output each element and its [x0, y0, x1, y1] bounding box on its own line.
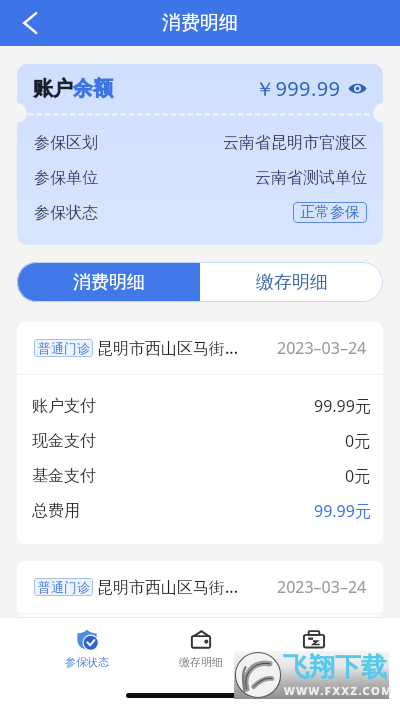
button[interactable]: Back: [9, 2, 51, 44]
button[interactable]: 缴存明细: [144, 618, 257, 694]
staticText: 余额: [73, 76, 113, 101]
staticText: 昆明市西山区马街...: [97, 576, 239, 598]
staticText: 缴存明细: [256, 271, 328, 294]
button[interactable]: 缴存明细: [200, 262, 383, 302]
staticText: 基金支付: [32, 466, 96, 486]
staticText: 总费用: [32, 501, 80, 521]
staticText: 现金支付: [32, 431, 96, 451]
staticText: 99.99元: [314, 395, 371, 417]
staticText: 缴存明细: [179, 655, 223, 669]
staticText: 昆明市西山区马街...: [97, 337, 239, 359]
staticText: ￥999.99: [255, 75, 341, 102]
staticText: 0元: [345, 430, 371, 452]
button[interactable]: Toggle balance visibility: [348, 82, 367, 95]
button[interactable]: 参保状态: [30, 618, 144, 694]
button[interactable]: 办事指南: [257, 618, 370, 694]
staticText: 账户: [33, 76, 73, 101]
button[interactable]: 消费明细: [17, 262, 200, 302]
staticText: 普通门诊: [38, 340, 90, 356]
staticText: 2023–03–24: [277, 576, 367, 598]
staticText: 云南省昆明市官渡区: [223, 133, 367, 153]
staticText: 办事指南: [292, 655, 336, 669]
staticText: 参保状态: [34, 203, 98, 223]
staticText: 0元: [345, 465, 371, 487]
staticText: WWW.FXXZ.COM: [284, 683, 394, 698]
staticText: 消费明细: [162, 11, 238, 35]
staticText: 参保单位: [34, 168, 98, 188]
staticText: 账户支付: [32, 396, 96, 416]
staticText: 普通门诊: [38, 579, 90, 595]
staticText: 云南省测试单位: [255, 168, 367, 188]
staticText: 正常参保: [300, 203, 360, 222]
staticText: 消费明细: [73, 271, 145, 294]
staticText: 参保状态: [65, 655, 109, 669]
staticText: 2023–03–24: [277, 337, 367, 359]
staticText: 参保区划: [34, 133, 98, 153]
button[interactable]: 普通门诊: [17, 561, 383, 617]
button[interactable]: 普通门诊: [17, 322, 383, 544]
staticText: 99.99元: [314, 500, 371, 522]
staticText: 飞翔下载: [283, 651, 387, 684]
